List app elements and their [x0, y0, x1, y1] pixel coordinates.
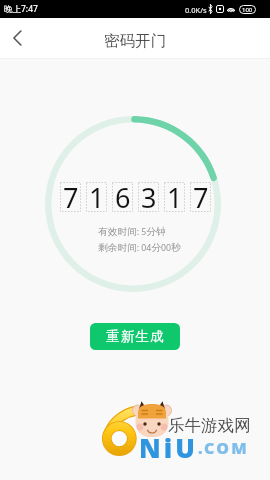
staticText: NiU — [139, 430, 198, 465]
button[interactable]: 重新生成 — [90, 323, 180, 350]
staticText: 6 — [115, 179, 131, 209]
staticText: 乐牛游戏网 — [168, 415, 251, 436]
staticText: 重新生成 — [106, 328, 165, 345]
staticText: 剩余时间: 04分00秒 — [98, 242, 181, 254]
staticText: 1 — [89, 179, 105, 209]
staticText: 7 — [63, 179, 79, 209]
staticText: 7 — [193, 179, 209, 209]
staticText: 密码开门 — [104, 31, 166, 51]
button[interactable]: Back — [6, 26, 30, 50]
staticText: .COM — [198, 437, 249, 459]
staticText: 100 — [242, 6, 253, 14]
staticText: 有效时间: 5分钟 — [98, 226, 166, 238]
staticText: 1 — [167, 179, 183, 209]
staticText: 3 — [141, 179, 157, 209]
staticText: 晚上7:47 — [4, 3, 38, 15]
staticText: 0.0K/s — [185, 5, 207, 15]
